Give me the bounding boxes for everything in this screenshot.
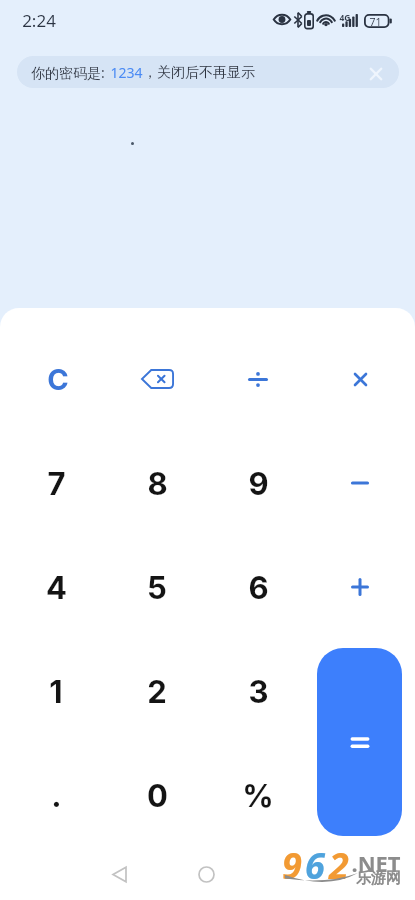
button[interactable]: 0	[113, 751, 201, 841]
button[interactable]: Backspace	[113, 334, 201, 424]
button[interactable]: 2	[113, 647, 201, 737]
staticText: 你的密码是:	[31, 63, 105, 82]
staticText: 5	[147, 569, 167, 607]
staticText: 8	[147, 465, 168, 503]
button[interactable]: 8	[113, 439, 201, 529]
staticText: 2	[329, 841, 349, 890]
staticText: 71	[369, 15, 382, 29]
staticText: 1	[49, 673, 63, 711]
button[interactable]: 9	[214, 439, 302, 529]
button[interactable]: Home	[183, 851, 229, 897]
button[interactable]: .	[12, 751, 100, 841]
staticText: 0	[147, 777, 168, 815]
button[interactable]: 5	[113, 543, 201, 633]
staticText: 6	[248, 569, 269, 607]
staticText: .	[51, 777, 62, 815]
staticText: 3	[248, 673, 269, 711]
staticText: 4	[46, 569, 67, 607]
staticText: 乐游网	[356, 869, 401, 888]
button[interactable]: Back	[96, 851, 142, 897]
staticText: 9	[282, 841, 302, 890]
button[interactable]: Plus	[316, 542, 404, 632]
button[interactable]: 1	[12, 647, 100, 737]
staticText: %	[242, 777, 274, 815]
button[interactable]: 7	[12, 439, 100, 529]
staticText: 4G	[339, 12, 351, 24]
button[interactable]: Multiply	[316, 334, 404, 424]
button[interactable]: 你的密码是:	[17, 56, 399, 88]
staticText: 9	[248, 465, 269, 503]
button[interactable]: Equals	[317, 648, 402, 836]
staticText: 2:24	[22, 9, 56, 32]
staticText: 6	[305, 841, 325, 890]
staticText: 7	[47, 465, 66, 503]
button[interactable]: 3	[214, 647, 302, 737]
staticText: .NET	[351, 848, 401, 878]
button[interactable]: C	[14, 334, 102, 424]
staticText: ，关闭后不再显示	[143, 64, 255, 82]
staticText: 2	[147, 673, 167, 711]
button[interactable]: Close	[364, 62, 388, 86]
staticText: 1234	[110, 63, 143, 82]
button[interactable]: %	[214, 751, 302, 841]
button[interactable]: 6	[214, 543, 302, 633]
button[interactable]: 4	[12, 543, 100, 633]
button[interactable]: Minus	[316, 438, 404, 528]
button[interactable]: Divide	[214, 334, 302, 424]
staticText: C	[47, 362, 69, 397]
